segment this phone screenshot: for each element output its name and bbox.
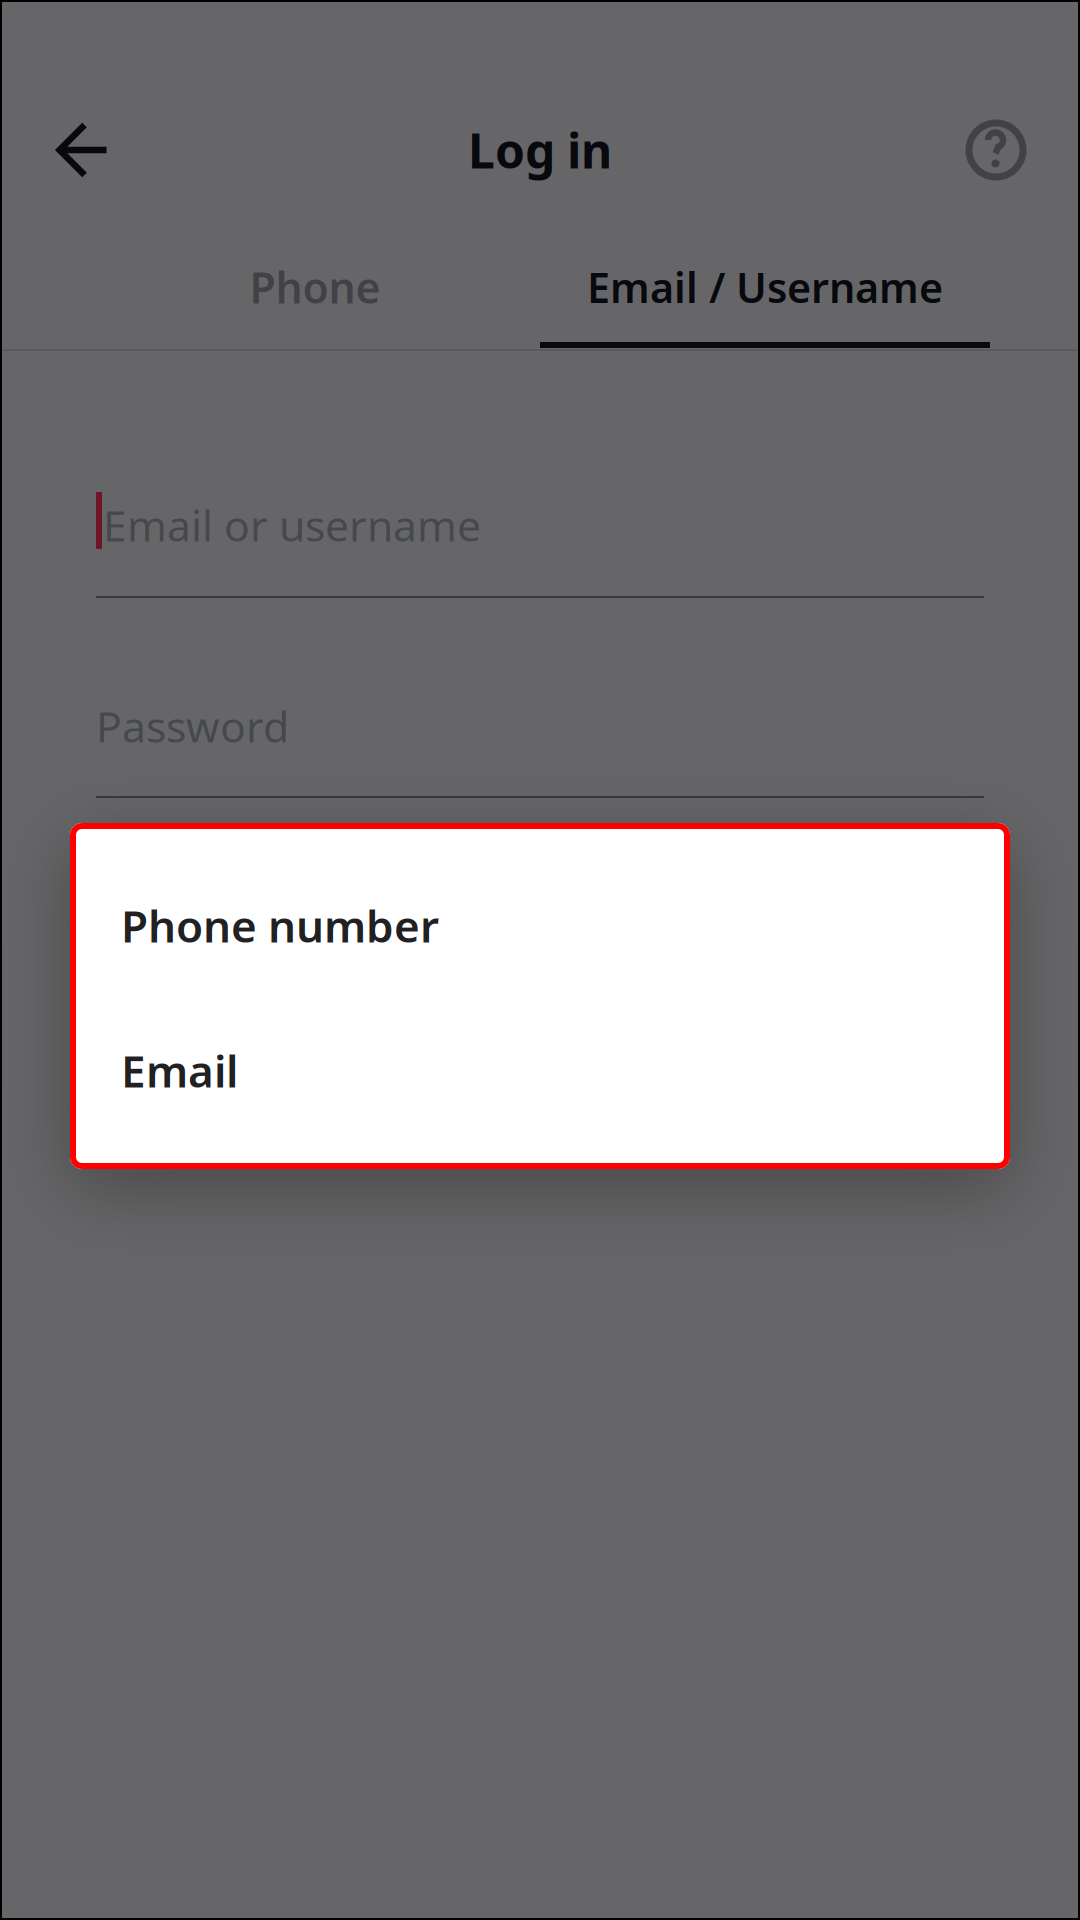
- staticText: Phone number: [121, 896, 439, 955]
- button[interactable]: Phone number: [70, 853, 1010, 998]
- staticText: Email: [121, 1041, 238, 1100]
- button[interactable]: Email or username: [96, 475, 984, 575]
- button[interactable]: Email: [70, 998, 1010, 1143]
- staticText: Log in: [468, 118, 612, 182]
- button[interactable]: Email / Username: [540, 237, 990, 337]
- button[interactable]: Password: [96, 676, 984, 776]
- staticText: Email / Username: [587, 260, 943, 314]
- staticText: Phone: [249, 259, 380, 315]
- button[interactable]: Back: [33, 100, 133, 200]
- button[interactable]: Phone: [90, 237, 540, 337]
- staticText: Password: [96, 698, 289, 754]
- button[interactable]: Help: [946, 100, 1046, 200]
- staticText: Email or username: [103, 497, 481, 553]
